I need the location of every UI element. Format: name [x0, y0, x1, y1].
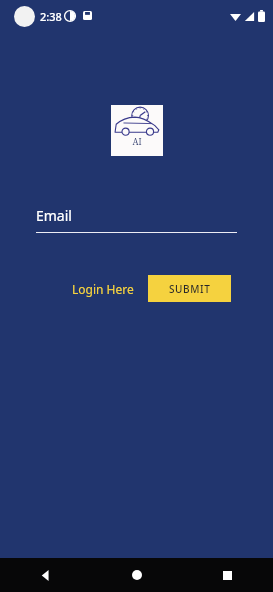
staticText: Email [36, 206, 72, 225]
staticText: Login Here [72, 281, 134, 297]
staticText: AI Associates [111, 136, 163, 149]
button[interactable]: Login Here [70, 277, 136, 301]
staticText: SUBMIT [169, 282, 211, 296]
button[interactable]: Email [36, 206, 237, 233]
button[interactable]: Home [91, 558, 182, 592]
button[interactable]: Back [0, 558, 91, 592]
button[interactable]: Recent apps [182, 558, 273, 592]
button[interactable]: SUBMIT [148, 275, 231, 302]
staticText: 2:38 [40, 9, 62, 24]
